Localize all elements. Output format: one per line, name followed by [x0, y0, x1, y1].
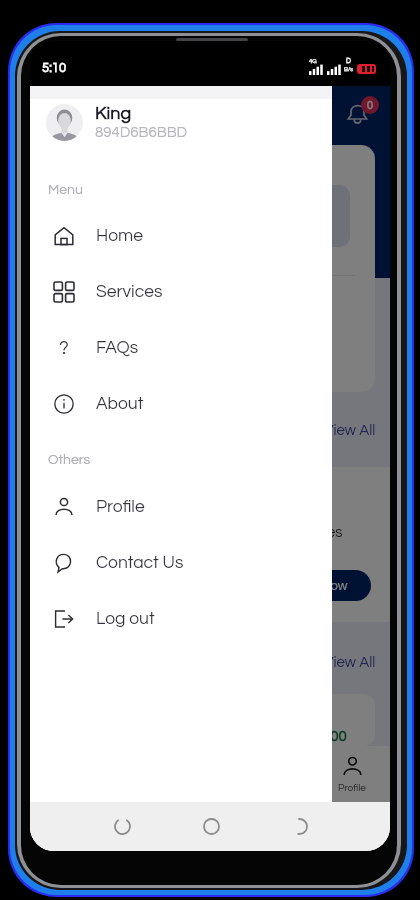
staticText: Profile — [338, 783, 366, 793]
button[interactable]: View All — [324, 423, 376, 438]
staticText: Services — [96, 283, 163, 301]
button[interactable]: Contact Us — [30, 535, 332, 591]
staticText: 4G — [309, 58, 317, 64]
button[interactable]: ? — [30, 320, 332, 376]
button[interactable]: Profile — [319, 746, 385, 802]
staticText: D — [346, 57, 351, 64]
staticText: FAQs — [96, 339, 139, 357]
staticText: Apply Now — [285, 579, 348, 592]
button[interactable]: Home — [193, 808, 229, 844]
staticText: 5:10 — [42, 61, 67, 74]
button[interactable]: Recents — [104, 808, 140, 844]
button[interactable]: Log out — [30, 591, 332, 647]
button[interactable]: Profile — [30, 479, 332, 535]
button[interactable]: Home — [30, 208, 332, 264]
staticText: Log out — [96, 610, 155, 628]
button[interactable]: Back — [281, 808, 317, 844]
button[interactable]: Apply Now — [262, 570, 371, 601]
staticText: About — [96, 395, 144, 413]
staticText: Menu — [48, 183, 83, 197]
staticText: 894D6B6BBD — [95, 125, 188, 140]
staticText: Profile — [96, 498, 145, 516]
button[interactable]: King — [30, 100, 332, 144]
staticText: ₹ 900 — [310, 729, 347, 744]
button[interactable]: Services — [30, 264, 332, 320]
staticText: Popular Services — [230, 525, 343, 540]
staticText: 0 — [367, 100, 374, 111]
staticText: ? — [59, 338, 69, 358]
staticText: Home — [96, 227, 144, 245]
staticText: B/s — [344, 66, 354, 72]
button[interactable]: View All — [324, 655, 376, 670]
staticText: Recent Activity — [62, 292, 156, 306]
button[interactable]: About — [30, 376, 332, 432]
staticText: King — [95, 104, 132, 123]
staticText: Others — [48, 453, 91, 467]
button[interactable]: Notifications — [343, 99, 371, 127]
staticText: Contact Us — [96, 554, 184, 572]
